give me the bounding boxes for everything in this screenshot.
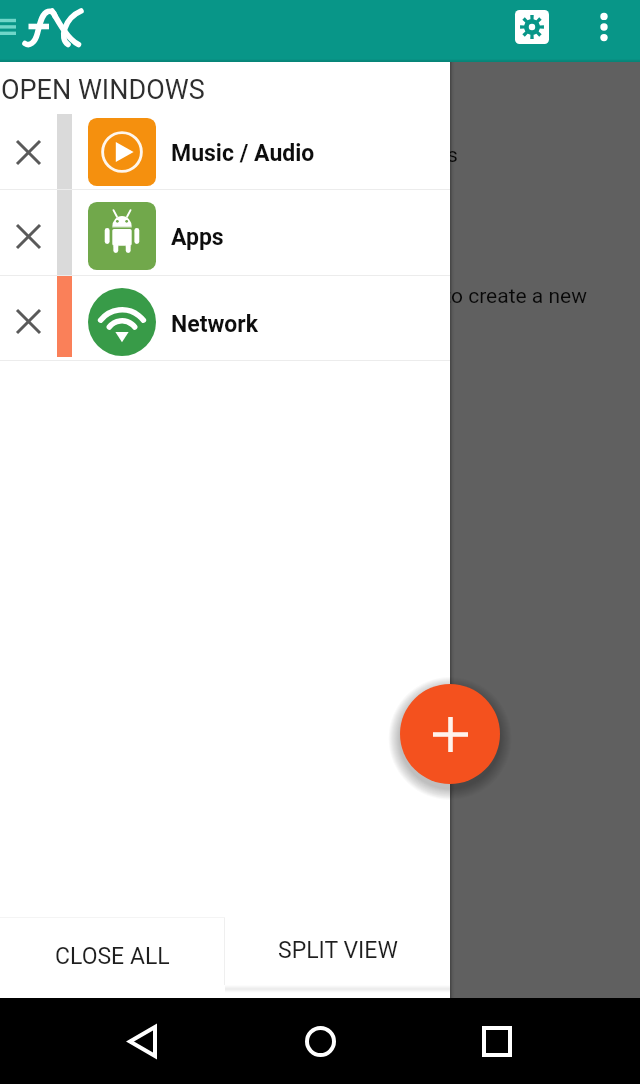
button[interactable]: CLOSE ALL	[0, 917, 225, 998]
button[interactable]: Back	[106, 998, 178, 1084]
button[interactable]: Recents	[461, 998, 533, 1084]
button[interactable]: Close Network	[0, 276, 450, 361]
button[interactable]: Settings	[506, 1, 558, 53]
staticText: No open windows	[291, 143, 458, 168]
button[interactable]: Close Music / Audio	[0, 108, 450, 190]
button[interactable]: SPLIT VIEW	[225, 918, 450, 985]
button[interactable]: Close Music / Audio	[0, 108, 57, 190]
button[interactable]: New window	[400, 684, 500, 784]
button[interactable]: Close Network	[0, 276, 57, 361]
staticText: Network	[171, 311, 259, 338]
staticText: OPEN WINDOWS	[1, 74, 205, 106]
button[interactable]: Home	[284, 998, 356, 1084]
button[interactable]: Open navigation menu	[0, 0, 110, 62]
button[interactable]: Close Apps	[0, 190, 450, 276]
button[interactable]: Close Apps	[0, 190, 57, 276]
staticText: Apps	[171, 224, 224, 251]
button[interactable]: More options	[578, 1, 630, 53]
staticText: SPLIT VIEW	[278, 937, 398, 964]
staticText: CLOSE ALL	[55, 943, 170, 970]
staticText: Press + to create a new	[369, 284, 587, 309]
staticText: Music / Audio	[171, 140, 315, 167]
